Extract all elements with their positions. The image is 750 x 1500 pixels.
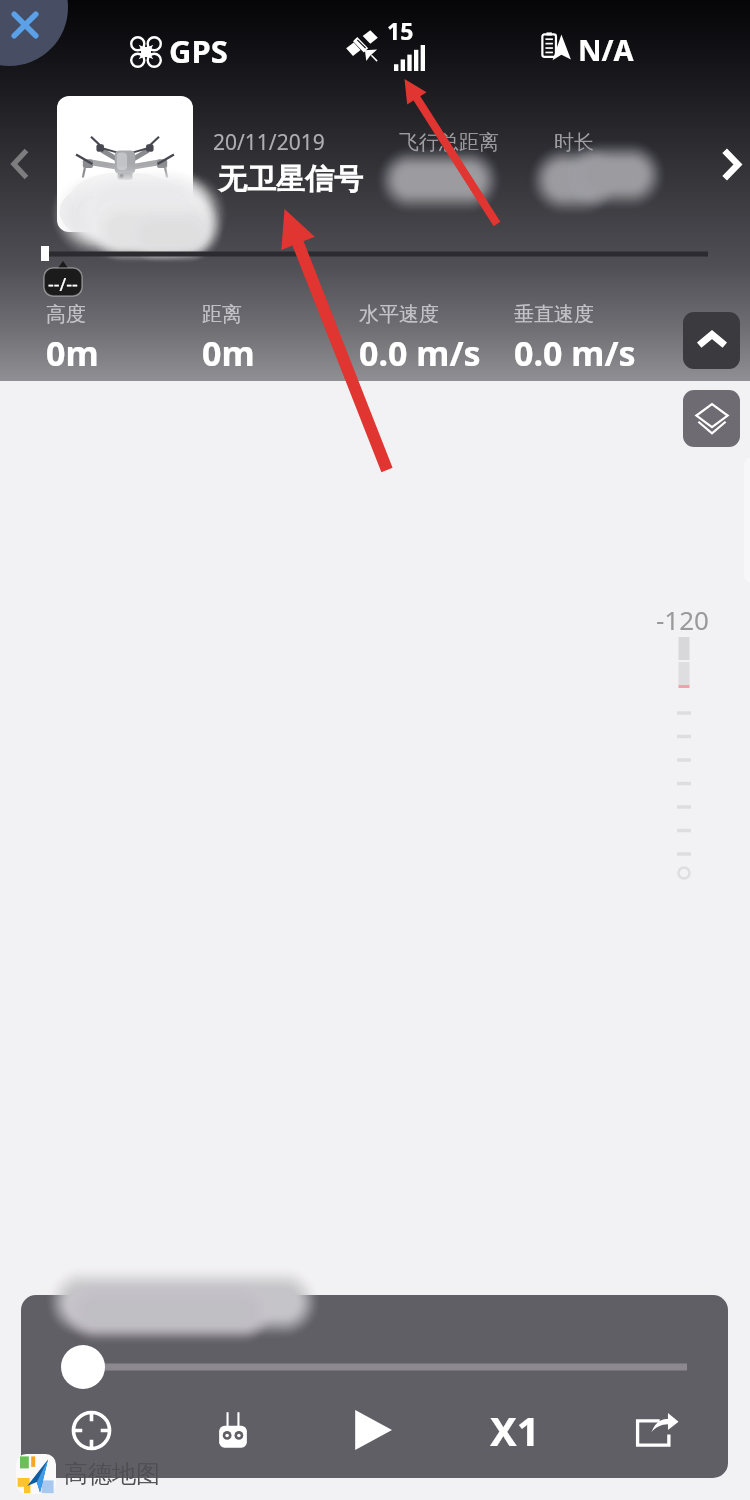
staticText: 0.0 m/s <box>514 330 636 376</box>
button[interactable]: X1 <box>444 1397 585 1463</box>
button[interactable]: Share <box>585 1397 726 1463</box>
staticText: 时长 <box>554 130 594 155</box>
button[interactable]: Map layers <box>683 390 740 447</box>
staticText: 15 <box>387 15 414 46</box>
staticText: X1 <box>490 1403 540 1457</box>
staticText: 飞行总距离 <box>399 130 499 155</box>
button[interactable]: 15 <box>340 12 436 84</box>
button[interactable]: Flight thumbnail <box>57 96 193 232</box>
button[interactable]: Play <box>303 1397 444 1463</box>
button[interactable]: N/A <box>536 18 646 86</box>
button[interactable]: Close <box>0 0 68 66</box>
button[interactable]: Previous record <box>0 138 42 190</box>
staticText: 0m <box>202 330 255 376</box>
staticText: 高德地图 <box>64 1459 160 1489</box>
staticText: GPS <box>169 30 228 72</box>
button[interactable]: Remote controller <box>162 1397 303 1463</box>
button[interactable]: GPS <box>122 18 238 86</box>
button[interactable]: Next record <box>712 138 750 190</box>
staticText: --/-- <box>48 272 78 297</box>
button[interactable]: Seek position <box>61 1345 105 1389</box>
button[interactable]: Expand panel <box>683 312 740 369</box>
staticText: 垂直速度 <box>514 302 594 327</box>
staticText: 水平速度 <box>359 302 439 327</box>
staticText: 距离 <box>202 302 242 327</box>
staticText: 0.0 m/s <box>359 330 481 376</box>
staticText: N/A <box>578 30 634 69</box>
button[interactable]: Re-center map <box>21 1397 162 1463</box>
staticText: 20/11/2019 <box>213 128 325 157</box>
staticText: 高度 <box>46 302 86 327</box>
staticText: 0m <box>46 330 99 376</box>
staticText: 无卫星信号 <box>218 161 363 198</box>
staticText: -120 <box>656 602 709 637</box>
